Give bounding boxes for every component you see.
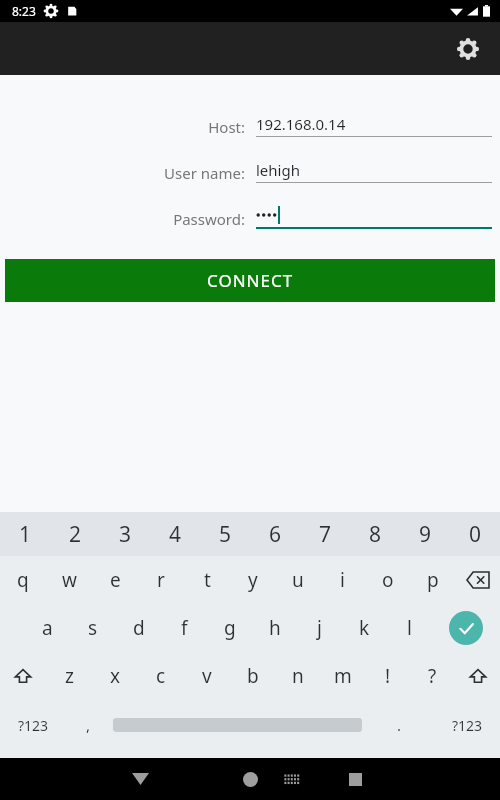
staticText: s: [88, 615, 98, 641]
button[interactable]: [256, 203, 492, 229]
staticText: ?: [428, 663, 437, 689]
staticText: l: [407, 615, 412, 641]
button[interactable]: l: [387, 604, 432, 652]
staticText: .: [397, 715, 402, 735]
button[interactable]: p: [410, 556, 455, 604]
button[interactable]: .: [365, 701, 434, 749]
button[interactable]: d: [116, 604, 162, 652]
button[interactable]: !: [365, 652, 410, 700]
staticText: CONNECT: [207, 269, 294, 292]
button[interactable]: k: [342, 604, 387, 652]
staticText: x: [110, 663, 121, 689]
button[interactable]: c: [138, 652, 184, 700]
button[interactable]: 3: [100, 512, 150, 556]
button[interactable]: z: [46, 652, 92, 700]
button[interactable]: lehigh: [256, 157, 492, 183]
staticText: 1: [19, 520, 32, 549]
button[interactable]: e: [92, 556, 138, 604]
staticText: 6: [269, 520, 282, 549]
button[interactable]: u: [275, 556, 320, 604]
staticText: z: [65, 663, 74, 689]
button[interactable]: Enter: [432, 604, 500, 652]
staticText: 5: [219, 520, 232, 549]
staticText: 192.168.0.14: [256, 114, 346, 134]
button[interactable]: 4: [150, 512, 200, 556]
button[interactable]: a: [24, 604, 70, 652]
staticText: 2: [69, 520, 82, 549]
staticText: a: [42, 615, 53, 641]
staticText: v: [202, 663, 212, 689]
button[interactable]: 7: [300, 512, 350, 556]
button[interactable]: 5: [200, 512, 250, 556]
button[interactable]: Keyboard: [272, 759, 312, 799]
staticText: 3: [119, 520, 132, 549]
button[interactable]: s: [70, 604, 116, 652]
button[interactable]: ,: [66, 701, 110, 749]
button[interactable]: ?123: [0, 701, 66, 749]
button[interactable]: n: [275, 652, 320, 700]
button[interactable]: j: [297, 604, 342, 652]
button[interactable]: 2: [50, 512, 100, 556]
staticText: k: [359, 615, 370, 641]
button[interactable]: 8: [350, 512, 400, 556]
staticText: h: [269, 615, 281, 641]
button[interactable]: q: [0, 556, 46, 604]
button[interactable]: y: [230, 556, 275, 604]
button[interactable]: ?123: [434, 701, 500, 749]
staticText: !: [385, 663, 391, 689]
button[interactable]: Shift: [0, 652, 46, 700]
button[interactable]: 6: [250, 512, 300, 556]
button[interactable]: r: [138, 556, 184, 604]
button[interactable]: o: [365, 556, 410, 604]
button[interactable]: Backspace: [455, 556, 500, 604]
staticText: 8:23: [12, 3, 36, 19]
button[interactable]: 1: [0, 512, 50, 556]
button[interactable]: f: [162, 604, 207, 652]
staticText: lehigh: [256, 160, 300, 180]
staticText: i: [340, 567, 345, 593]
staticText: ?123: [18, 716, 49, 735]
staticText: Password:: [173, 209, 245, 229]
button[interactable]: Recents: [335, 759, 375, 799]
staticText: Host:: [208, 117, 245, 137]
button[interactable]: Back: [120, 759, 160, 799]
staticText: t: [204, 567, 211, 593]
staticText: ,: [86, 715, 91, 735]
button[interactable]: Shift: [455, 652, 500, 700]
button[interactable]: Home: [230, 759, 270, 799]
button[interactable]: ?: [410, 652, 455, 700]
button[interactable]: m: [320, 652, 365, 700]
button[interactable]: g: [207, 604, 252, 652]
button[interactable]: t: [184, 556, 230, 604]
button[interactable]: i: [320, 556, 365, 604]
staticText: j: [317, 615, 322, 641]
staticText: 4: [169, 520, 182, 549]
button[interactable]: 192.168.0.14: [256, 111, 492, 137]
staticText: 9: [419, 520, 432, 549]
staticText: f: [181, 615, 188, 641]
staticText: r: [157, 567, 165, 593]
staticText: ?123: [452, 716, 483, 735]
staticText: User name:: [164, 163, 245, 183]
staticText: y: [248, 567, 258, 593]
button[interactable]: h: [252, 604, 297, 652]
staticText: g: [224, 615, 236, 641]
staticText: b: [247, 663, 259, 689]
staticText: u: [292, 567, 304, 593]
button[interactable]: b: [230, 652, 275, 700]
staticText: d: [133, 615, 145, 641]
button[interactable]: 0: [450, 512, 500, 556]
button[interactable]: Settings: [448, 29, 488, 69]
staticText: 7: [319, 520, 332, 549]
staticText: c: [156, 663, 166, 689]
staticText: m: [334, 663, 352, 689]
button[interactable]: x: [92, 652, 138, 700]
staticText: p: [427, 567, 439, 593]
button[interactable]: w: [46, 556, 92, 604]
button[interactable]: v: [184, 652, 230, 700]
button[interactable]: 9: [400, 512, 450, 556]
button[interactable]: CONNECT: [5, 259, 495, 302]
button[interactable]: Space: [110, 701, 365, 749]
staticText: w: [62, 567, 77, 593]
staticText: 0: [469, 520, 482, 549]
